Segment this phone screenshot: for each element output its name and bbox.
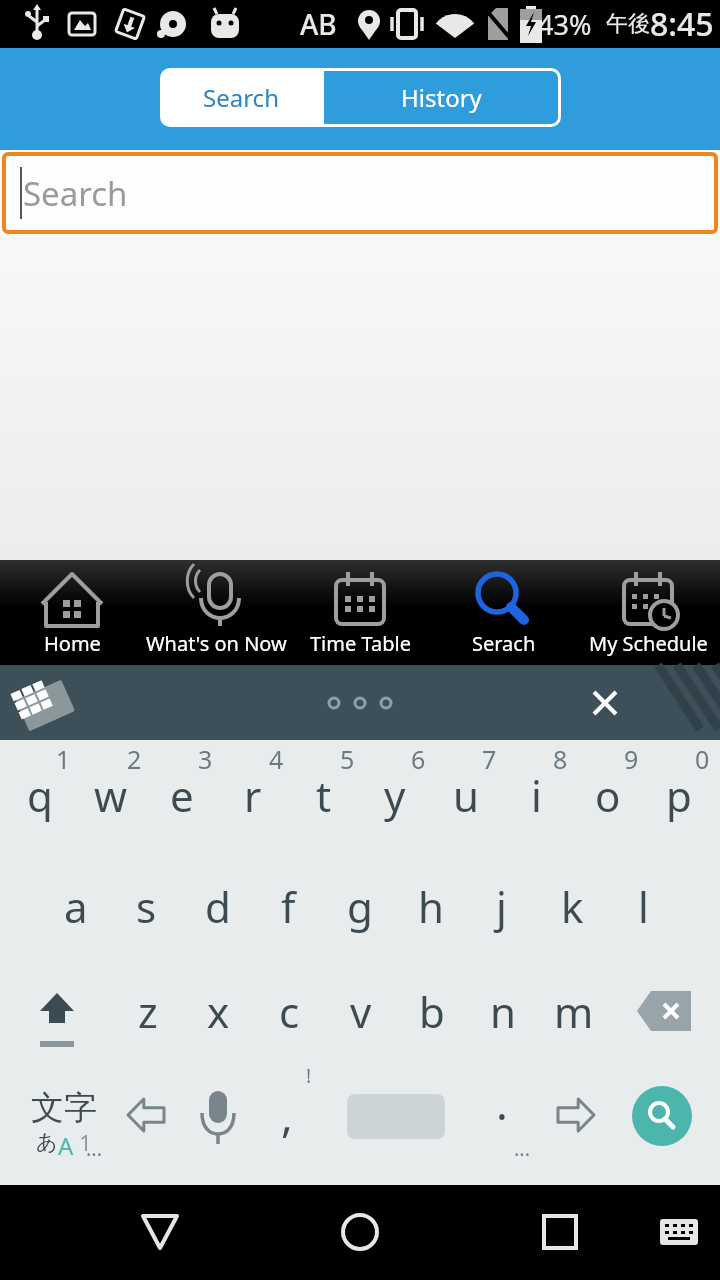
staticText: , xyxy=(281,1085,293,1145)
button[interactable]: Time Table xyxy=(288,560,432,665)
staticText: あ xyxy=(36,1129,58,1155)
button[interactable] xyxy=(0,981,112,1041)
staticText: Search xyxy=(203,81,279,114)
staticText: i xyxy=(531,767,542,824)
button[interactable]: i xyxy=(501,765,572,825)
staticText: v xyxy=(350,983,372,1040)
button[interactable] xyxy=(609,981,720,1041)
button[interactable]: x xyxy=(183,981,254,1041)
button[interactable] xyxy=(570,665,640,740)
staticText: What's on Now xyxy=(146,630,287,657)
staticText: . xyxy=(496,1073,508,1133)
button[interactable]: d xyxy=(182,876,253,936)
button[interactable] xyxy=(118,1087,174,1143)
button[interactable]: Search xyxy=(2,152,718,234)
staticText: 6 xyxy=(411,742,426,776)
button[interactable]: My Schedule xyxy=(576,560,720,665)
button[interactable]: 1 xyxy=(28,742,99,776)
button[interactable]: g xyxy=(324,876,395,936)
button[interactable] xyxy=(320,1193,400,1273)
staticText: 2 xyxy=(127,742,142,776)
staticText: n xyxy=(490,983,516,1040)
staticText: 1 xyxy=(56,742,71,776)
staticText: t xyxy=(316,767,332,824)
button[interactable]: p xyxy=(643,765,714,825)
staticText: z xyxy=(138,983,158,1040)
staticText: s xyxy=(136,878,157,935)
button[interactable]: o xyxy=(572,765,643,825)
button[interactable]: 5 xyxy=(312,742,383,776)
button[interactable]: n xyxy=(467,981,538,1041)
staticText: j xyxy=(496,878,507,935)
button[interactable]: q xyxy=(4,765,75,825)
button[interactable]: 3 xyxy=(170,742,241,776)
staticText: AB xyxy=(300,5,337,43)
button[interactable]: f xyxy=(253,876,324,936)
staticText: 0 xyxy=(695,742,710,776)
button[interactable]: 6 xyxy=(383,742,454,776)
button[interactable]: 文字 xyxy=(18,1087,110,1177)
button[interactable]: 8 xyxy=(525,742,596,776)
button[interactable]: l xyxy=(608,876,679,936)
staticText: ... xyxy=(86,1135,103,1162)
staticText: 1 xyxy=(74,1129,92,1158)
staticText: Time Table xyxy=(310,630,411,657)
button[interactable]: 2 xyxy=(99,742,170,776)
staticText: p xyxy=(666,767,692,824)
button[interactable]: y xyxy=(359,765,430,825)
button[interactable] xyxy=(120,1193,200,1273)
button[interactable]: s xyxy=(111,876,182,936)
button[interactable]: c xyxy=(254,981,325,1041)
staticText: e xyxy=(170,767,194,824)
button[interactable]: t xyxy=(288,765,359,825)
staticText: 午後 xyxy=(606,10,650,38)
button[interactable]: b xyxy=(396,981,467,1041)
staticText: k xyxy=(561,878,584,935)
button[interactable]: z xyxy=(112,981,183,1041)
button[interactable]: k xyxy=(537,876,608,936)
button[interactable]: v xyxy=(325,981,396,1041)
button[interactable]: j xyxy=(466,876,537,936)
button[interactable]: 9 xyxy=(596,742,667,776)
button[interactable] xyxy=(520,1193,600,1273)
button[interactable]: What's on Now xyxy=(144,560,288,665)
staticText: m xyxy=(554,983,594,1040)
button[interactable]: e xyxy=(146,765,217,825)
button[interactable]: 7 xyxy=(454,742,525,776)
staticText: 文字 xyxy=(31,1087,97,1129)
button[interactable]: w xyxy=(75,765,146,825)
button[interactable]: m xyxy=(538,981,609,1041)
staticText: ... xyxy=(514,1135,531,1162)
staticText: g xyxy=(347,878,373,935)
staticText: 3 xyxy=(198,742,213,776)
button[interactable]: 4 xyxy=(241,742,312,776)
button[interactable]: h xyxy=(395,876,466,936)
button[interactable]: r xyxy=(217,765,288,825)
button[interactable]: Serach xyxy=(432,560,576,665)
staticText: c xyxy=(279,983,300,1040)
button[interactable]: 0 xyxy=(667,742,720,776)
staticText: d xyxy=(205,878,231,935)
button[interactable] xyxy=(632,1086,692,1146)
button[interactable] xyxy=(192,1089,244,1155)
staticText: ! xyxy=(306,1063,312,1089)
button[interactable]: History xyxy=(321,68,561,127)
button[interactable] xyxy=(0,665,90,740)
staticText: r xyxy=(244,767,262,824)
staticText: h xyxy=(418,878,444,935)
staticText: Home xyxy=(44,630,101,657)
button[interactable]: Home xyxy=(0,560,144,665)
staticText: 8:45 xyxy=(650,2,714,46)
button[interactable]: a xyxy=(40,876,111,936)
button[interactable] xyxy=(548,1087,604,1143)
staticText: f xyxy=(281,878,296,935)
staticText: a xyxy=(64,878,88,935)
button[interactable]: u xyxy=(430,765,501,825)
staticText: 7 xyxy=(482,742,497,776)
staticText: y xyxy=(384,767,406,824)
staticText: 4 xyxy=(269,742,284,776)
staticText: l xyxy=(638,878,649,935)
button[interactable]: Search xyxy=(160,68,321,127)
staticText: My Schedule xyxy=(589,630,708,657)
